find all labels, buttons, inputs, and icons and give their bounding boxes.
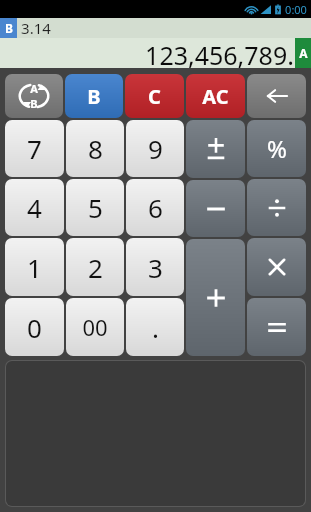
staticText: % <box>267 132 287 165</box>
button[interactable]: Backspace <box>247 74 306 118</box>
button[interactable]: 6 <box>126 179 184 236</box>
staticText: A <box>30 81 38 96</box>
staticText: 7 <box>27 131 42 166</box>
button[interactable]: C <box>125 74 184 118</box>
staticText: A <box>299 45 308 61</box>
staticText: B <box>87 83 101 110</box>
button[interactable]: 4 <box>5 179 64 236</box>
button[interactable]: Plus <box>186 239 245 356</box>
staticText: 123,456,789. <box>145 38 294 68</box>
button[interactable]: Equals <box>247 298 306 356</box>
staticText: 3.14 <box>21 18 51 38</box>
staticText: 00 <box>82 312 108 342</box>
staticText: 0:00 <box>285 2 307 17</box>
button[interactable]: AC <box>186 74 245 118</box>
button[interactable]: Multiply <box>247 238 306 296</box>
staticText: 4 <box>27 190 42 225</box>
button[interactable]: 00 <box>66 298 124 356</box>
button[interactable]: 0 <box>5 298 64 356</box>
button[interactable]: B <box>65 74 123 118</box>
button[interactable]: Plus minus <box>186 120 245 178</box>
staticText: 1 <box>27 250 42 285</box>
button[interactable]: Divide <box>247 179 306 236</box>
staticText: AC <box>202 83 229 110</box>
staticText: C <box>148 83 161 110</box>
staticText: 9 <box>148 131 163 166</box>
staticText: . <box>152 310 159 345</box>
staticText: B <box>30 96 38 111</box>
button[interactable]: 9 <box>126 120 184 177</box>
button[interactable]: 8 <box>66 120 124 177</box>
staticText: 8 <box>88 131 103 166</box>
button[interactable]: . <box>126 298 184 356</box>
staticText: 2 <box>88 250 103 285</box>
button[interactable]: % <box>247 120 306 177</box>
staticText: 0 <box>27 310 42 345</box>
staticText: 3 <box>148 250 163 285</box>
button[interactable]: 3 <box>126 238 184 296</box>
button[interactable]: Minus <box>186 180 245 237</box>
button[interactable]: 5 <box>66 179 124 236</box>
button[interactable]: Swap A and B <box>5 74 63 118</box>
button[interactable]: 2 <box>66 238 124 296</box>
staticText: B <box>5 20 13 36</box>
button[interactable]: 7 <box>5 120 64 177</box>
button[interactable]: 1 <box>5 238 64 296</box>
staticText: 6 <box>148 190 163 225</box>
staticText: 5 <box>88 190 103 225</box>
